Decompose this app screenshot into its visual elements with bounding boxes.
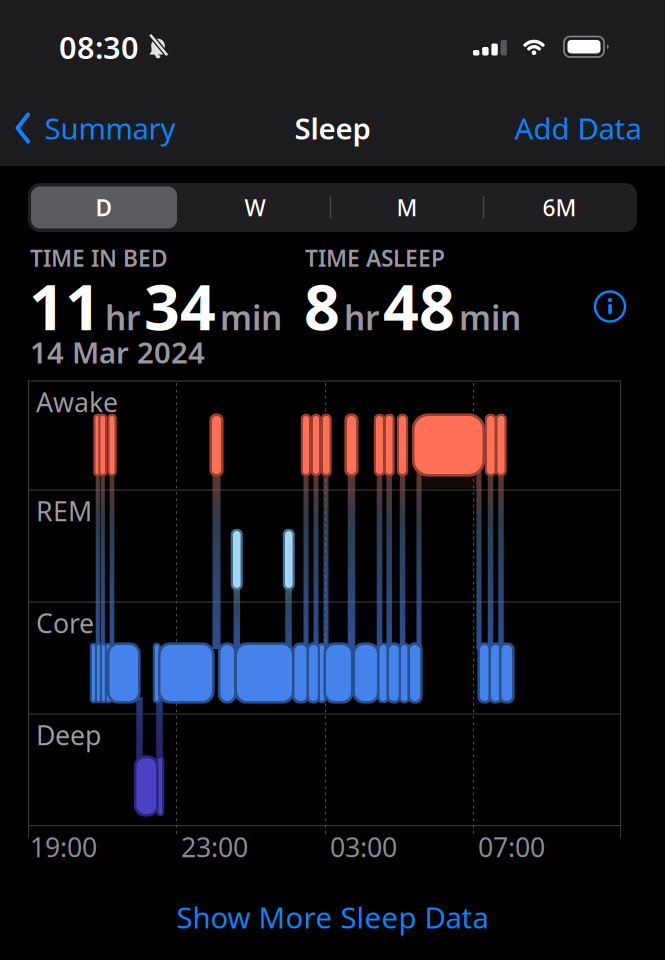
button[interactable]: Summary — [14, 108, 184, 148]
staticText: 8 — [304, 264, 340, 348]
staticText: Show More Sleep Data — [176, 897, 488, 936]
button[interactable]: D — [31, 186, 177, 228]
staticText: Deep — [36, 717, 101, 753]
staticText: 11 — [29, 264, 101, 348]
staticText: REM — [36, 493, 92, 529]
staticText: hr — [105, 295, 140, 339]
button[interactable] — [595, 291, 625, 321]
staticText: min — [459, 295, 521, 339]
staticText: 6M — [542, 192, 576, 222]
staticText: min — [220, 295, 282, 339]
staticText: Sleep — [294, 108, 370, 147]
button[interactable]: Show More Sleep Data — [176, 895, 488, 939]
button[interactable]: 6M — [489, 186, 629, 228]
staticText: Core — [36, 605, 94, 641]
staticText: D — [95, 192, 112, 222]
staticText: Awake — [36, 384, 118, 420]
staticText: 19:00 — [30, 829, 97, 865]
staticText: 03:00 — [330, 829, 397, 865]
button[interactable]: M — [337, 186, 477, 228]
staticText: 23:00 — [181, 829, 248, 865]
staticText: M — [396, 192, 417, 222]
button[interactable]: Add Data — [514, 108, 641, 148]
staticText: 34 — [144, 264, 216, 348]
button[interactable]: W — [185, 186, 325, 228]
staticText: Add Data — [514, 108, 641, 147]
staticText: 48 — [383, 264, 455, 348]
staticText: hr — [344, 295, 379, 339]
staticText: W — [244, 192, 265, 222]
staticText: TIME IN BED — [30, 243, 168, 273]
staticText: TIME ASLEEP — [305, 243, 445, 273]
staticText: 14 Mar 2024 — [30, 332, 205, 371]
staticText: 07:00 — [478, 829, 545, 865]
staticText: Summary — [44, 108, 175, 147]
staticText: 08:30 — [59, 27, 139, 67]
